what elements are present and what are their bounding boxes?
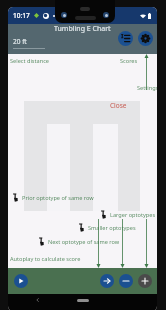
staticText: Scores [120, 57, 138, 65]
button[interactable]: Smaller optotypes [119, 274, 133, 288]
button[interactable]: Play [14, 274, 28, 288]
staticText: Tumbling E Chart [54, 24, 111, 34]
staticText: 20 ft [13, 37, 27, 46]
staticText: Close [110, 101, 127, 110]
staticText: Prior optotype of same row [22, 194, 94, 202]
staticText: Next optotype of same row [48, 238, 120, 246]
staticText: Select distance [10, 57, 49, 65]
button[interactable]: Scores [118, 31, 133, 46]
button[interactable]: 20 ft [13, 37, 45, 49]
button[interactable]: Larger optotypes [138, 274, 152, 288]
staticText: Autoplay to calculate score [10, 255, 81, 263]
button[interactable]: Next optotype [100, 274, 114, 288]
staticText: 10:17 [13, 11, 30, 20]
staticText: Smaller optotypes [88, 224, 136, 232]
button[interactable]: Settings [138, 31, 153, 46]
staticText: Larger optotypes [110, 211, 156, 219]
staticText: Settings [137, 84, 157, 92]
